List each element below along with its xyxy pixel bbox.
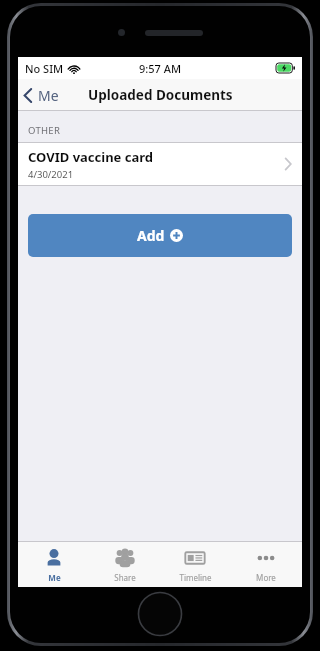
staticText: OTHER [28, 124, 61, 137]
button[interactable]: Add [28, 214, 292, 257]
button[interactable]: Timeline [161, 542, 229, 587]
staticText: 9:57 AM [139, 61, 182, 76]
button[interactable]: Me [20, 542, 88, 587]
staticText: Uploaded Documents [88, 86, 233, 104]
staticText: 4/30/2021 [28, 168, 74, 181]
staticText: Share [114, 572, 136, 583]
staticText: More [256, 572, 276, 583]
staticText: Add [137, 226, 165, 245]
staticText: No SIM [25, 61, 64, 76]
staticText: Me [38, 86, 59, 105]
staticText: Me [48, 572, 61, 583]
button[interactable]: Me [18, 79, 67, 111]
button[interactable]: More [232, 542, 300, 587]
button[interactable]: COVID vaccine card [18, 143, 302, 185]
staticText: COVID vaccine card [28, 148, 154, 166]
staticText: Timeline [179, 572, 212, 583]
button[interactable]: Share [91, 542, 159, 587]
